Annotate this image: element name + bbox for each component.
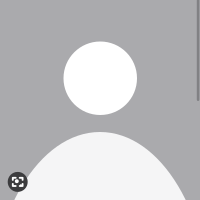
button[interactable]: Visual Look Up bbox=[8, 172, 28, 192]
